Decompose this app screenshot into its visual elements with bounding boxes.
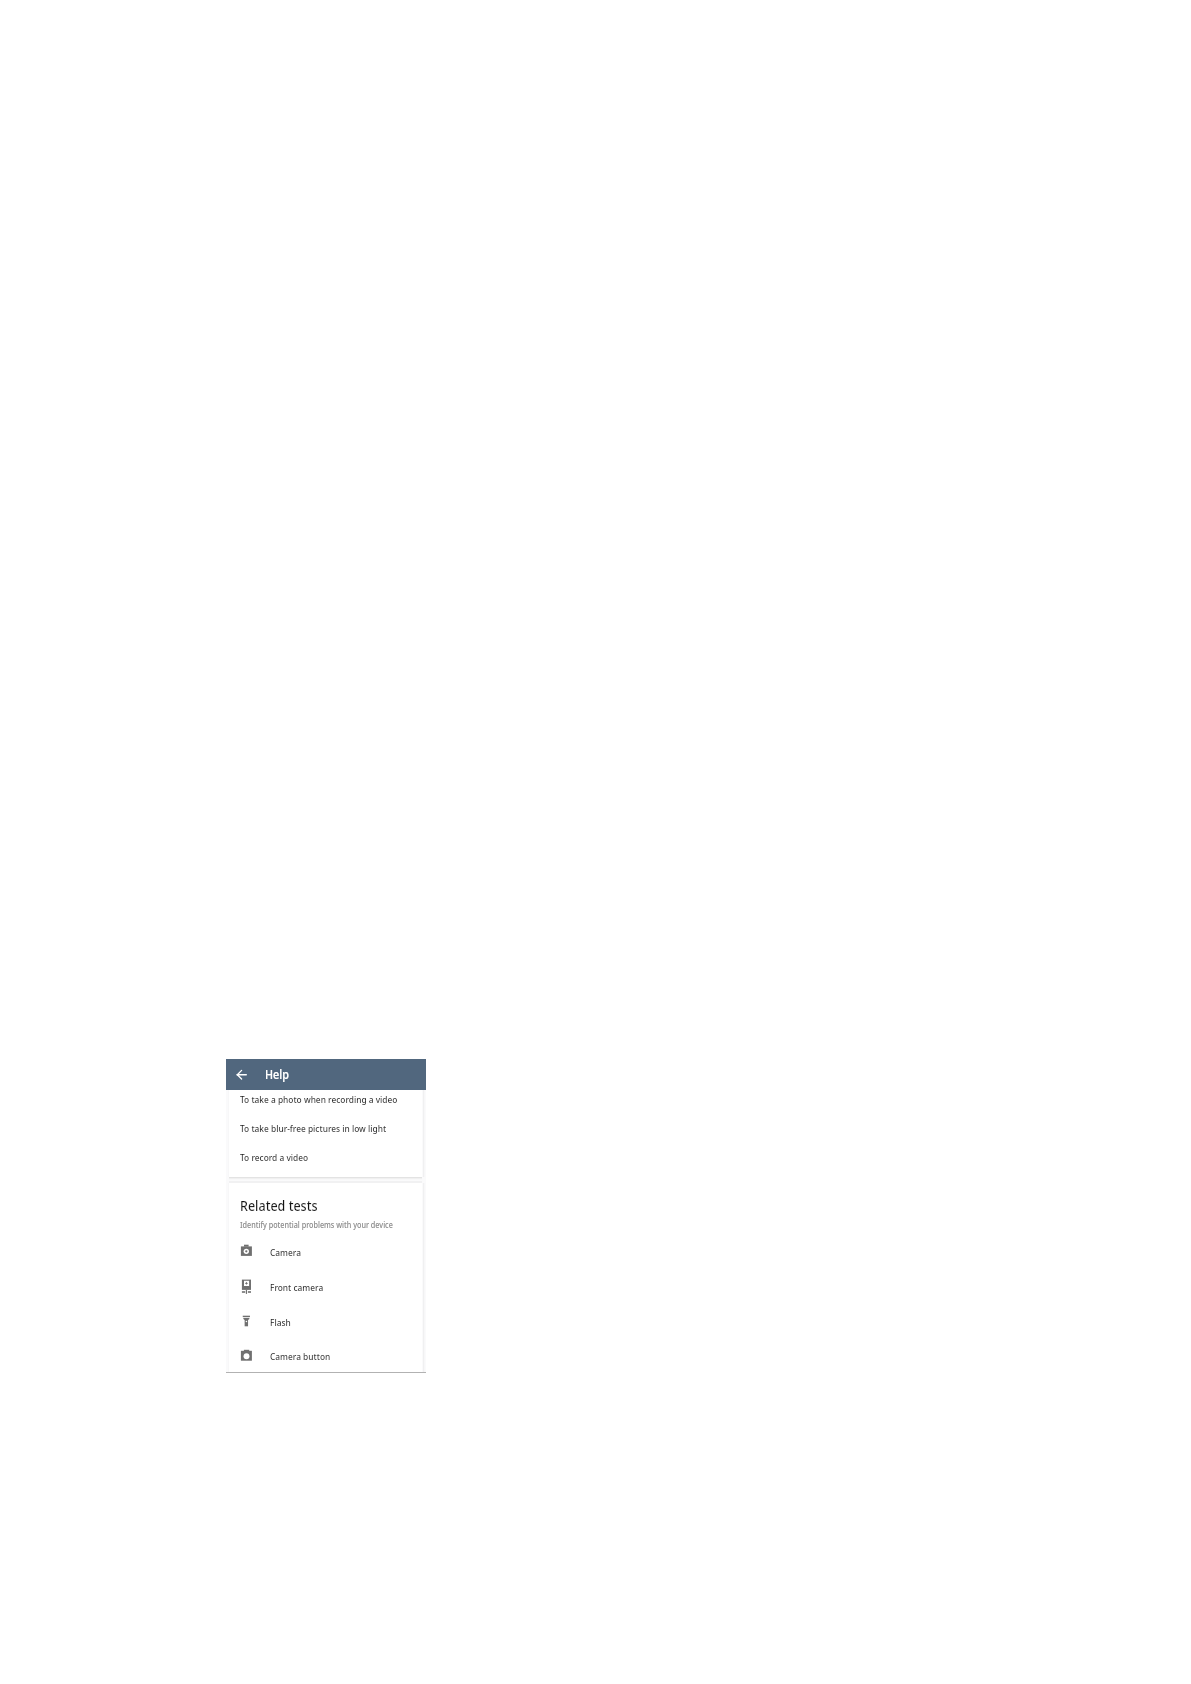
button[interactable]: Navigate back [231,1064,252,1085]
staticText: Camera [270,1246,301,1259]
button[interactable]: Front camera [229,1269,422,1304]
button[interactable]: Camera button [229,1340,422,1373]
staticText: Flash [270,1316,291,1329]
staticText: To take blur-free pictures in low light [240,1122,386,1135]
staticText: Help [265,1066,289,1083]
button[interactable]: Camera [229,1234,422,1269]
staticText: Camera button [270,1350,331,1363]
button[interactable]: To record a video [229,1147,422,1177]
staticText: Related tests [240,1196,318,1216]
staticText: Front camera [270,1281,324,1294]
button[interactable]: Flash [229,1304,422,1339]
staticText: To record a video [240,1151,309,1164]
button[interactable]: To take blur-free pictures in low light [229,1117,422,1147]
button[interactable]: To take a photo when recording a video [229,1087,422,1117]
staticText: Identify potential problems with your de… [240,1219,393,1230]
staticText: To take a photo when recording a video [240,1093,397,1106]
